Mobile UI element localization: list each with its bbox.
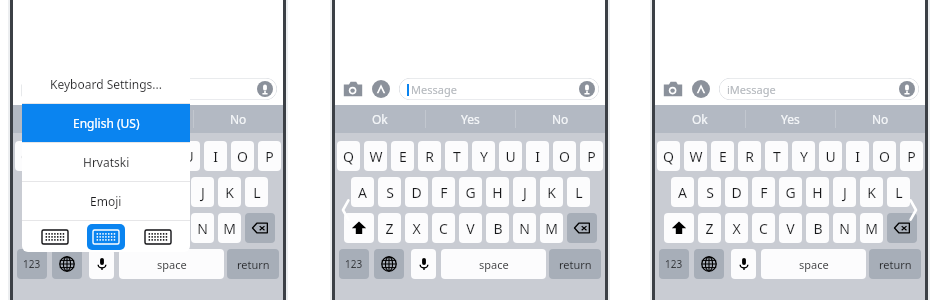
button[interactable]: L <box>245 177 268 207</box>
button[interactable]: Change keyboard <box>694 249 724 279</box>
button[interactable]: T <box>765 141 788 171</box>
button[interactable]: R <box>418 141 441 171</box>
button[interactable]: Delete <box>887 213 917 243</box>
button[interactable]: N <box>513 213 536 243</box>
button[interactable]: K <box>540 177 563 207</box>
button[interactable]: D <box>405 177 428 207</box>
button[interactable]: iMessage <box>77 78 277 100</box>
button[interactable]: U <box>819 141 842 171</box>
button[interactable]: Q <box>337 141 360 171</box>
button[interactable]: E <box>391 141 414 171</box>
button[interactable]: M <box>218 213 241 243</box>
button[interactable]: M <box>540 213 563 243</box>
button[interactable]: English (US) <box>22 104 190 142</box>
button[interactable]: R <box>96 141 119 171</box>
button[interactable]: J <box>191 177 214 207</box>
button[interactable]: I <box>846 141 869 171</box>
button[interactable]: W <box>364 141 387 171</box>
button[interactable]: Change keyboard <box>374 249 404 279</box>
button[interactable]: Camera <box>661 77 685 101</box>
button[interactable]: Keyboard Settings... <box>22 65 190 103</box>
button[interactable]: Dictate <box>898 80 916 98</box>
button[interactable]: No <box>193 105 283 133</box>
button[interactable]: Z <box>56 213 79 243</box>
button[interactable]: V <box>459 213 482 243</box>
button[interactable]: Dictate <box>731 249 756 279</box>
button[interactable]: W <box>684 141 707 171</box>
button[interactable]: Change keyboard <box>52 249 82 279</box>
button[interactable]: Y <box>792 141 815 171</box>
button[interactable]: Camera <box>19 77 43 101</box>
button[interactable]: P <box>258 141 281 171</box>
button[interactable]: P <box>900 141 923 171</box>
button[interactable]: Emoji <box>22 182 190 220</box>
button[interactable]: Q <box>15 141 38 171</box>
button[interactable]: Shift <box>344 213 374 243</box>
button[interactable]: Ok <box>13 105 103 133</box>
button[interactable]: U <box>499 141 522 171</box>
button[interactable]: No <box>835 105 925 133</box>
button[interactable]: J <box>833 177 856 207</box>
button[interactable]: P <box>580 141 603 171</box>
button[interactable]: Y <box>150 141 173 171</box>
button[interactable]: H <box>486 177 509 207</box>
button[interactable]: Full keyboard <box>87 224 125 250</box>
button[interactable]: G <box>459 177 482 207</box>
button[interactable]: Dictate <box>411 249 436 279</box>
button[interactable]: Q <box>657 141 680 171</box>
button[interactable]: Yes <box>103 105 193 133</box>
button[interactable]: Split keyboard right <box>139 224 177 250</box>
button[interactable]: M <box>860 213 883 243</box>
button[interactable]: 123 <box>17 249 47 279</box>
button[interactable]: O <box>553 141 576 171</box>
button[interactable]: H <box>806 177 829 207</box>
button[interactable]: iMessage <box>719 78 919 100</box>
button[interactable]: Y <box>472 141 495 171</box>
button[interactable]: Hrvatski <box>22 143 190 181</box>
button[interactable]: V <box>779 213 802 243</box>
button[interactable]: space <box>761 249 866 279</box>
button[interactable]: X <box>83 213 106 243</box>
button[interactable]: C <box>432 213 455 243</box>
button[interactable]: I <box>204 141 227 171</box>
button[interactable]: A <box>29 177 52 207</box>
button[interactable]: B <box>806 213 829 243</box>
button[interactable]: R <box>738 141 761 171</box>
button[interactable]: K <box>218 177 241 207</box>
button[interactable]: L <box>567 177 590 207</box>
button[interactable]: I <box>526 141 549 171</box>
button[interactable]: Delete <box>567 213 597 243</box>
button[interactable]: G <box>779 177 802 207</box>
button[interactable]: Dictate <box>256 80 274 98</box>
button[interactable]: U <box>177 141 200 171</box>
button[interactable]: Yes <box>425 105 515 133</box>
button[interactable]: Z <box>698 213 721 243</box>
button[interactable]: return <box>869 249 921 279</box>
button[interactable]: N <box>833 213 856 243</box>
button[interactable]: 123 <box>339 249 369 279</box>
button[interactable]: X <box>405 213 428 243</box>
button[interactable]: A <box>671 177 694 207</box>
button[interactable]: D <box>83 177 106 207</box>
button[interactable]: J <box>513 177 536 207</box>
button[interactable]: F <box>432 177 455 207</box>
button[interactable]: 123 <box>659 249 689 279</box>
button[interactable]: Ok <box>655 105 745 133</box>
button[interactable]: A <box>351 177 374 207</box>
button[interactable]: C <box>110 213 133 243</box>
button[interactable]: K <box>860 177 883 207</box>
button[interactable]: L <box>887 177 910 207</box>
button[interactable]: S <box>698 177 721 207</box>
button[interactable]: No <box>515 105 605 133</box>
button[interactable]: Z <box>378 213 401 243</box>
button[interactable]: B <box>486 213 509 243</box>
button[interactable]: O <box>231 141 254 171</box>
button[interactable]: Shift <box>22 213 52 243</box>
button[interactable]: Camera <box>341 77 365 101</box>
button[interactable]: G <box>137 177 160 207</box>
button[interactable]: X <box>725 213 748 243</box>
button[interactable]: Shift <box>664 213 694 243</box>
button[interactable]: B <box>164 213 187 243</box>
button[interactable]: E <box>711 141 734 171</box>
button[interactable]: return <box>227 249 279 279</box>
